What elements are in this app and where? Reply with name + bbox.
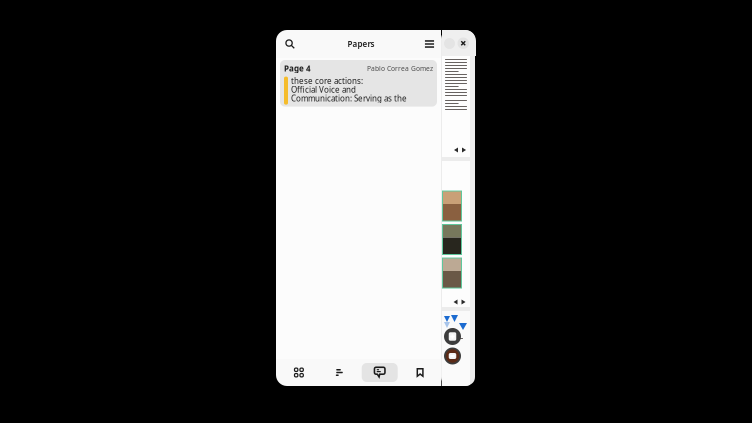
button[interactable]: Bookmarks [400,359,440,386]
button[interactable]: Close [457,37,469,49]
staticText: Communication: Serving as the [291,93,407,104]
staticText: Page 4 [284,63,311,74]
button[interactable]: Thumbnails [279,359,319,386]
button[interactable]: Search [280,33,300,55]
button[interactable]: Zoom out [444,347,461,364]
button[interactable]: Menu [422,33,437,55]
staticText: these core actions: [291,76,363,86]
button[interactable]: Outline [319,359,359,386]
staticText: Pablo Correa Gomez [367,64,433,73]
button[interactable]: Page 4 [280,60,437,107]
staticText: Papers [347,39,374,49]
button[interactable]: Annotations [359,359,400,386]
button[interactable]: Zoom in [444,328,461,345]
staticText: Official Voice and [291,84,356,95]
